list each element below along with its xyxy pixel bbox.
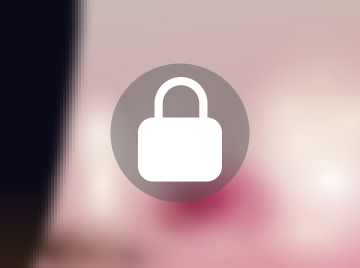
button[interactable]: Locked [110, 63, 249, 202]
